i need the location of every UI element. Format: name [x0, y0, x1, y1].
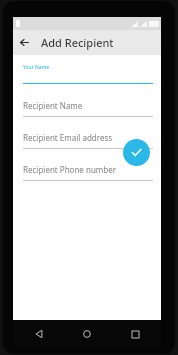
button[interactable]: Recent apps	[121, 322, 149, 346]
staticText: Recipient Email address	[23, 132, 113, 143]
button[interactable]: Home	[73, 322, 101, 346]
button[interactable]: Back	[25, 322, 53, 346]
staticText: Recipient Name	[23, 100, 83, 111]
button[interactable]: Save recipient	[123, 139, 150, 166]
staticText: Recipient Phone number	[23, 164, 117, 175]
button[interactable]: Recipient Email address	[23, 132, 153, 149]
staticText: Your Name	[23, 64, 50, 71]
button[interactable]: Navigate up	[15, 33, 34, 52]
button[interactable]: Recipient Phone number	[23, 164, 153, 181]
button[interactable]: Your Name	[23, 64, 153, 84]
staticText: Add Recipient	[41, 35, 114, 50]
button[interactable]: Recipient Name	[23, 100, 153, 117]
